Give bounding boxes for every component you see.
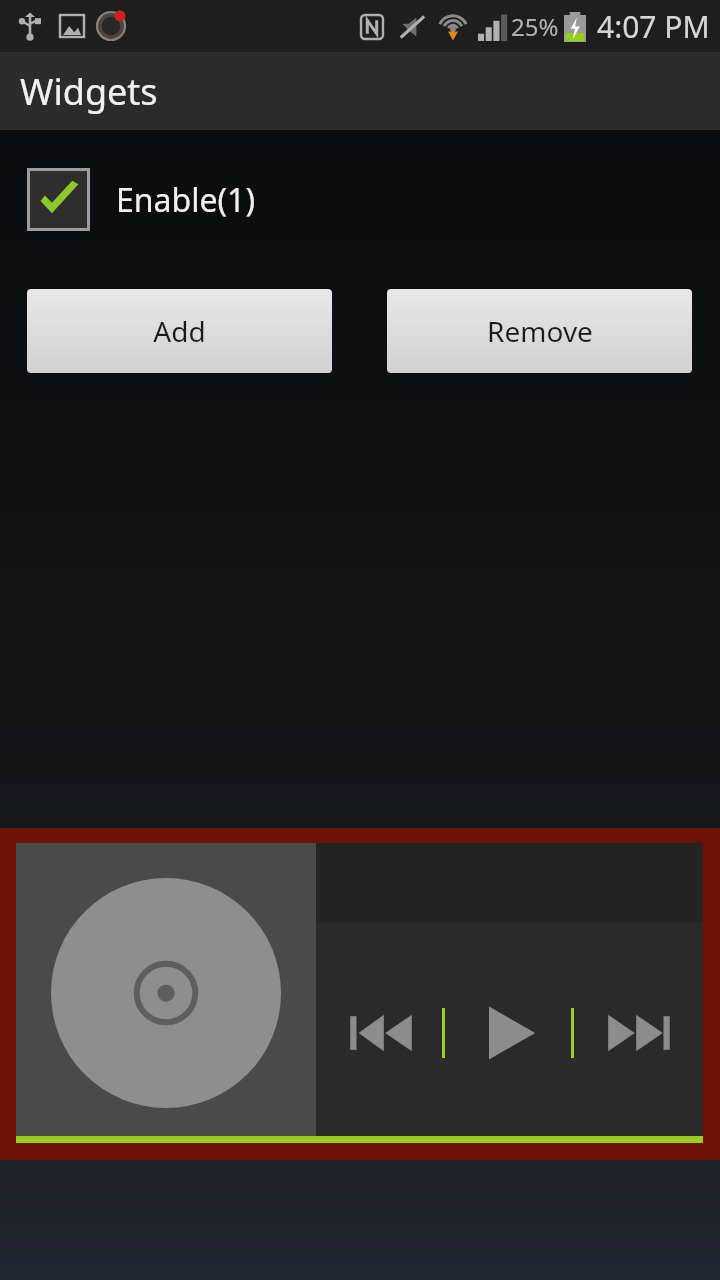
button[interactable]: Remove xyxy=(387,289,692,373)
button[interactable]: Enable(1) xyxy=(27,168,256,231)
button[interactable]: Previous xyxy=(316,922,445,1143)
staticText: Enable(1) xyxy=(116,178,256,222)
button[interactable]: Add xyxy=(27,289,332,373)
staticText: 4:07 PM xyxy=(597,6,710,47)
staticText: Widgets xyxy=(20,67,158,116)
button[interactable]: Play xyxy=(445,922,574,1143)
staticText: Remove xyxy=(487,312,593,350)
staticText: 25% xyxy=(511,10,559,43)
button[interactable]: Next xyxy=(574,922,703,1143)
button[interactable]: Album art xyxy=(16,843,316,1143)
staticText: Add xyxy=(153,312,206,350)
